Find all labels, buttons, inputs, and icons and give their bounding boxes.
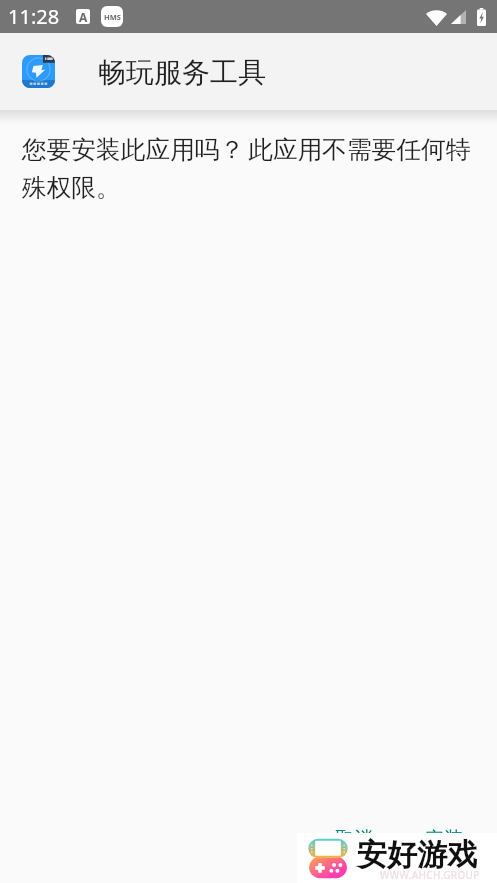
- staticText: 您要安装此应用吗？ 此应用不需要任何特殊权限。: [22, 132, 481, 203]
- staticText: 畅玩服务工具: [98, 55, 266, 90]
- staticText: WWW.AHCH.GROUP: [380, 868, 480, 880]
- button[interactable]: 安装: [409, 818, 479, 860]
- staticText: A: [79, 9, 88, 24]
- staticText: HMS: [104, 12, 121, 22]
- staticText: 11:28: [8, 3, 60, 30]
- staticText: 安装: [425, 827, 463, 851]
- button[interactable]: 取消: [319, 818, 389, 860]
- staticText: 安好游戏: [357, 836, 477, 874]
- staticText: 取消: [335, 827, 373, 851]
